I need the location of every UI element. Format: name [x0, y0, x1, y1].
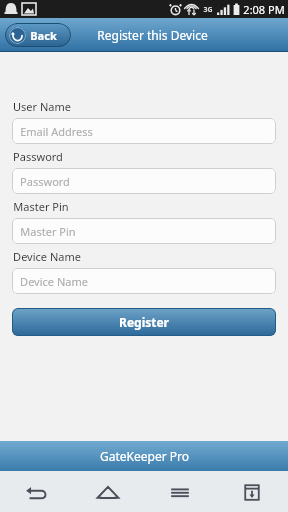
staticText: Master Pin — [20, 224, 76, 239]
button[interactable]: Recent apps — [216, 471, 288, 512]
button[interactable]: Email Address — [12, 118, 276, 144]
staticText: Password — [20, 174, 70, 189]
staticText: GateKeeper Pro — [100, 448, 189, 464]
button[interactable]: Device Name — [12, 268, 276, 294]
staticText: Device Name — [13, 249, 81, 264]
button[interactable]: Home — [72, 471, 144, 512]
button[interactable]: Menu — [144, 471, 216, 512]
staticText: Master Pin — [13, 199, 69, 214]
staticText: Device Name — [20, 274, 88, 289]
staticText: User Name — [13, 99, 71, 114]
button[interactable]: Back — [0, 471, 72, 512]
button[interactable]: Master Pin — [12, 218, 276, 244]
button[interactable]: Password — [12, 168, 276, 194]
button[interactable]: Register — [12, 308, 276, 336]
staticText: 3G — [203, 5, 213, 15]
staticText: Email Address — [20, 124, 93, 139]
staticText: 2:08 PM — [243, 2, 285, 17]
staticText: Register this Device — [97, 27, 208, 43]
staticText: Password — [13, 149, 63, 164]
staticText: Register — [119, 314, 169, 330]
staticText: Back — [30, 28, 57, 43]
button[interactable]: Back — [5, 23, 71, 47]
